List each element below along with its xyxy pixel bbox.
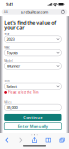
staticText: Model	[4, 59, 13, 63]
button[interactable]: Enter Manually	[4, 123, 61, 130]
staticText: 9:41	[6, 2, 13, 7]
staticText: a.rebuiltcar.com	[20, 9, 48, 14]
staticText: Toyota	[7, 50, 18, 55]
staticText: Please select the Trim	[8, 91, 38, 94]
button[interactable]: Page settings	[3, 9, 10, 14]
staticText: AA	[4, 10, 8, 14]
button[interactable]: Back	[0, 137, 14, 143]
staticText: Select	[7, 84, 17, 89]
staticText: 2023	[7, 36, 15, 42]
staticText: Make	[4, 46, 10, 49]
staticText: Enter Manually	[18, 124, 48, 129]
button[interactable]: Bookmarks	[41, 137, 55, 143]
button[interactable]: Tabs	[55, 137, 69, 143]
button[interactable]: 2023	[4, 36, 61, 42]
staticText: 35,000	[7, 105, 18, 110]
staticText: Continue	[23, 115, 42, 120]
button[interactable]: Forward	[14, 137, 28, 143]
button[interactable]: 35,000	[4, 104, 61, 111]
staticText: 4Runner	[7, 63, 21, 69]
staticText: Trim	[4, 79, 9, 83]
staticText: Let's find the value of	[4, 19, 56, 26]
staticText: Year	[4, 32, 9, 36]
button[interactable]: Select	[4, 83, 61, 90]
staticText: your car	[4, 24, 24, 31]
button[interactable]: Reload	[59, 9, 66, 14]
staticText: Miles	[4, 101, 11, 104]
button[interactable]: Toyota	[4, 49, 61, 56]
button[interactable]: Share	[28, 137, 41, 143]
button[interactable]: 4Runner	[4, 63, 61, 69]
button[interactable]: Continue	[4, 114, 61, 121]
